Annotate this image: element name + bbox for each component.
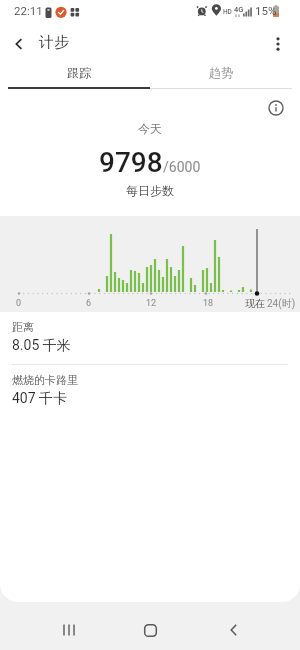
- button[interactable]: [53, 614, 85, 646]
- staticText: 22:11: [14, 4, 43, 17]
- button[interactable]: [134, 614, 166, 646]
- staticText: 8.05 千米: [12, 337, 71, 355]
- staticText: 趋势: [209, 65, 233, 80]
- staticText: /6000: [163, 159, 201, 175]
- staticText: 现在: [245, 297, 265, 310]
- staticText: 每日步数: [126, 183, 174, 198]
- button[interactable]: [4, 30, 34, 58]
- staticText: HD: [223, 8, 232, 16]
- staticText: 距离: [12, 320, 34, 334]
- staticText: 18: [203, 298, 214, 309]
- button[interactable]: [218, 614, 250, 646]
- staticText: 0: [16, 298, 22, 309]
- button[interactable]: [264, 30, 292, 58]
- staticText: 24(时): [267, 297, 296, 310]
- staticText: 跟踪: [67, 65, 91, 80]
- button[interactable]: 跟踪: [8, 58, 150, 86]
- staticText: 6: [86, 298, 92, 309]
- staticText: 15%: [255, 4, 277, 17]
- staticText: 计步: [39, 33, 69, 52]
- staticText: 9798: [99, 146, 163, 179]
- staticText: 今天: [138, 121, 162, 136]
- staticText: 407 千卡: [12, 390, 68, 408]
- staticText: 4G: [234, 5, 244, 14]
- staticText: 燃烧的卡路里: [12, 373, 78, 387]
- button[interactable]: 趋势: [150, 58, 292, 86]
- button[interactable]: [262, 94, 290, 122]
- staticText: 12: [146, 298, 157, 309]
